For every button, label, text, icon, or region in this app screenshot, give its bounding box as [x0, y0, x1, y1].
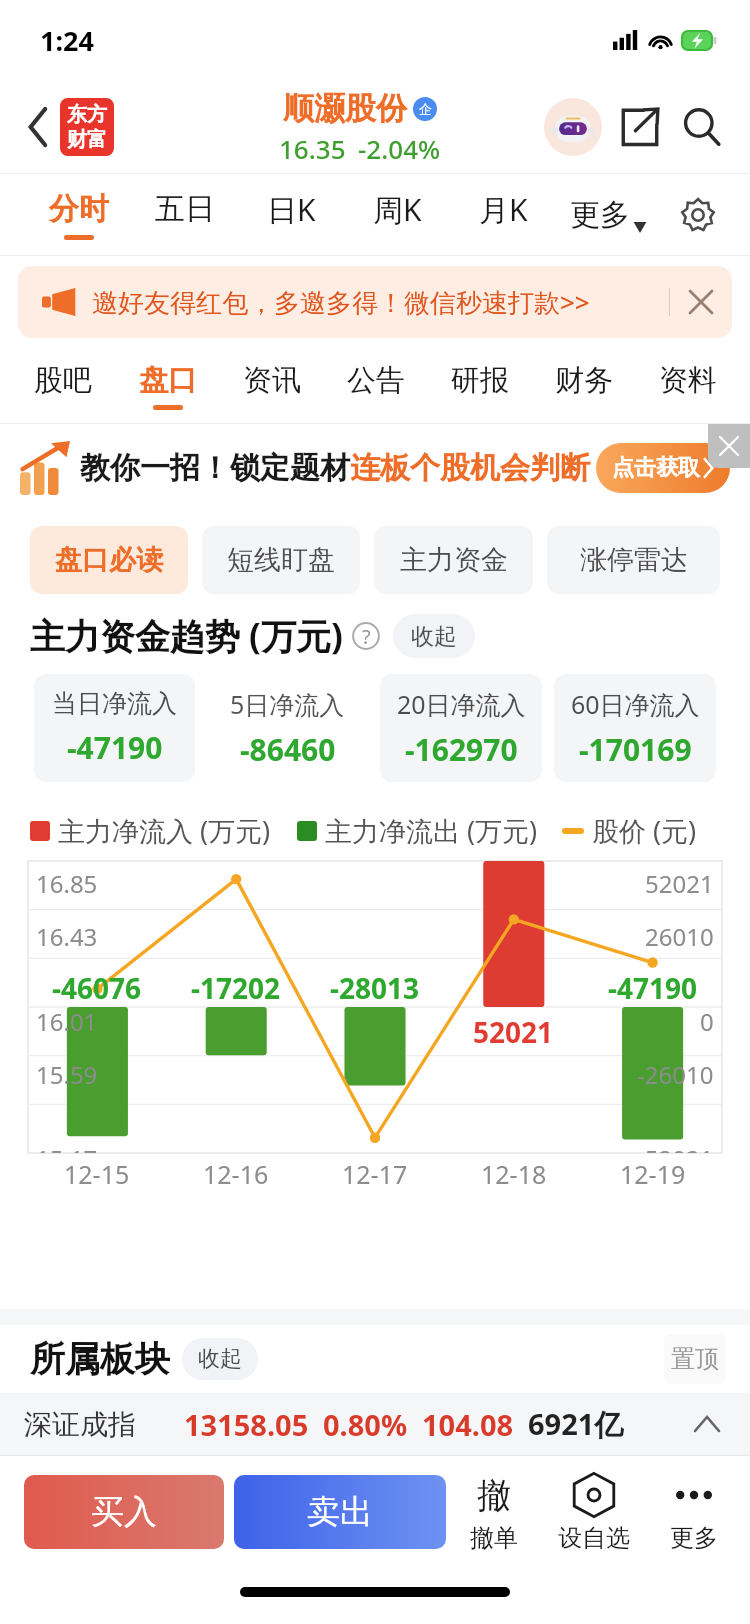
button[interactable]: Assistant [542, 96, 604, 158]
button[interactable]: 东方 [60, 98, 114, 156]
staticText: 设自选 [558, 1523, 630, 1553]
staticText: 20日净流入 [397, 687, 526, 721]
button[interactable]: Settings [662, 174, 734, 256]
button[interactable]: 涨停雷达 [547, 526, 720, 594]
staticText: 52021 [645, 867, 714, 900]
staticText: 卖出 [307, 1491, 373, 1533]
button[interactable]: Share [610, 97, 670, 157]
staticText: 26010 [645, 920, 714, 953]
button[interactable]: 研报 [428, 348, 532, 424]
staticText: 收起 [411, 622, 457, 651]
button[interactable]: 财务 [532, 348, 636, 424]
button[interactable]: Close ad [708, 424, 750, 468]
staticText: 涨停雷达 [580, 543, 688, 577]
staticText: 顺灏股份 [283, 89, 407, 128]
staticText: 资讯 [243, 362, 301, 399]
staticText: 周K [373, 189, 422, 230]
button[interactable]: 当日净流入 [34, 674, 195, 782]
button[interactable]: 收起 [411, 614, 457, 658]
staticText: 6921亿 [528, 1404, 624, 1444]
staticText: 12-17 [342, 1157, 408, 1191]
button[interactable]: 盘口必读 [30, 526, 188, 594]
staticText: -17202 [191, 969, 281, 1007]
button[interactable]: 盘口 [115, 348, 220, 424]
staticText: 12-19 [620, 1157, 686, 1191]
staticText: 16.35 [279, 131, 346, 166]
staticText: 资料 [659, 362, 717, 399]
button[interactable]: Expand [686, 1403, 728, 1445]
button[interactable]: 分时 [26, 174, 132, 256]
staticText: -28013 [330, 969, 420, 1007]
staticText: -52021 [637, 1142, 714, 1153]
button[interactable]: 点击获取 [612, 443, 714, 493]
staticText: 104.08 [422, 1405, 514, 1444]
button[interactable]: 教你一招！锁定题材 [0, 424, 750, 512]
staticText: 1:24 [40, 22, 94, 59]
staticText: 股吧 [34, 362, 92, 399]
staticText: -162970 [405, 729, 518, 770]
button[interactable]: 五日 [132, 174, 238, 256]
button[interactable]: 更多 [556, 174, 662, 256]
staticText: 16.01 [36, 1005, 98, 1038]
button[interactable]: 卖出 [234, 1475, 446, 1549]
staticText: 5日净流入 [230, 687, 345, 721]
staticText: 更多 [670, 1523, 718, 1553]
staticText: 研报 [451, 362, 509, 399]
button[interactable]: 60日净流入 [554, 674, 716, 782]
staticText: 盘口 [139, 362, 197, 399]
staticText: 16.43 [36, 920, 98, 953]
button[interactable]: 股吧 [10, 348, 115, 424]
staticText: 财富 [67, 127, 107, 152]
staticText: 主力净流出 (万元) [325, 812, 538, 849]
staticText: 日K [267, 189, 316, 230]
button[interactable]: 主力资金 [374, 526, 533, 594]
button[interactable]: 收起 [198, 1338, 242, 1380]
button[interactable]: Search [672, 97, 732, 157]
button[interactable]: 资料 [636, 348, 740, 424]
staticText: 收起 [198, 1345, 242, 1373]
button[interactable]: 置顶 [664, 1334, 726, 1384]
staticText: 0.80% [323, 1405, 408, 1444]
button[interactable]: 公告 [324, 348, 428, 424]
button[interactable]: 邀好友得红包，多邀多得！微信秒速打款>> [18, 266, 732, 338]
button[interactable]: Help [351, 621, 381, 651]
button[interactable]: Close banner [670, 266, 732, 338]
staticText: 连板个股机会判断 [350, 449, 590, 487]
button[interactable]: Back [14, 102, 64, 152]
staticText: -2.04% [358, 131, 441, 166]
staticText: 所属板块 [30, 1337, 170, 1381]
button[interactable]: 日K [238, 174, 344, 256]
button[interactable]: 资讯 [220, 348, 324, 424]
staticText: 12-18 [481, 1157, 547, 1191]
staticText: -170169 [579, 729, 692, 770]
button[interactable]: 顺灏股份 [279, 89, 441, 166]
staticText: -86460 [240, 729, 336, 770]
staticText: 月K [479, 189, 528, 230]
button[interactable]: 更多 [648, 1471, 740, 1553]
staticText: -46076 [52, 969, 142, 1007]
staticText: -47190 [608, 969, 698, 1007]
staticText: 企 [419, 101, 432, 117]
button[interactable]: 买入 [24, 1475, 224, 1549]
staticText: 财务 [555, 362, 613, 399]
staticText: 60日净流入 [571, 687, 700, 721]
button[interactable]: 20日净流入 [380, 674, 542, 782]
button[interactable]: 撤 [448, 1471, 540, 1553]
staticText: 撤单 [470, 1523, 518, 1553]
button[interactable]: 月K [450, 174, 556, 256]
button[interactable]: 周K [344, 174, 450, 256]
staticText: 当日净流入 [52, 688, 177, 719]
staticText: 撤 [477, 1474, 511, 1517]
staticText: 13158.05 [184, 1405, 309, 1444]
staticText: 12-16 [203, 1157, 269, 1191]
staticText: 15.59 [36, 1058, 98, 1091]
button[interactable]: 5日净流入 [207, 674, 368, 782]
button[interactable]: 短线盯盘 [202, 526, 360, 594]
staticText: 52021 [473, 1013, 554, 1051]
staticText: 置顶 [671, 1344, 719, 1374]
button[interactable]: 设自选 [548, 1471, 640, 1553]
staticText: -47190 [67, 727, 163, 768]
staticText: 盘口必读 [55, 543, 163, 577]
staticText: 股价 (元) [592, 812, 697, 849]
staticText: 分时 [49, 190, 109, 228]
